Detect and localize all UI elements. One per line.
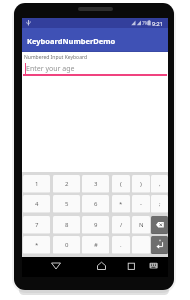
button[interactable]: (: [112, 175, 130, 193]
button[interactable]: .: [112, 236, 130, 254]
staticText: N: [139, 221, 144, 229]
staticText: 4: [35, 200, 39, 208]
button[interactable]: [149, 262, 159, 270]
button[interactable]: 9: [82, 216, 109, 234]
button[interactable]: [96, 261, 107, 271]
button[interactable]: 1: [23, 175, 50, 193]
button[interactable]: #: [82, 236, 109, 254]
button[interactable]: 5: [53, 195, 80, 213]
staticText: /: [120, 221, 123, 229]
button[interactable]: ,: [151, 175, 168, 193]
button[interactable]: 2: [53, 175, 80, 193]
staticText: .: [120, 241, 122, 249]
staticText: Enter your age: [26, 64, 75, 74]
button[interactable]: ): [132, 175, 150, 193]
staticText: ): [140, 180, 142, 188]
staticText: KeyboardNumberDemo: [27, 36, 116, 46]
button[interactable]: N: [132, 216, 150, 234]
staticText: *: [119, 200, 123, 208]
staticText: ;: [159, 200, 161, 208]
button[interactable]: 7: [23, 216, 50, 234]
staticText: Numbered Input Keyboard: [24, 54, 87, 61]
button[interactable]: Enter your age: [23, 60, 167, 75]
staticText: 7: [35, 221, 39, 229]
button[interactable]: 8: [53, 216, 80, 234]
staticText: #: [94, 241, 98, 249]
staticText: ,: [159, 180, 161, 188]
button[interactable]: [50, 261, 62, 271]
button[interactable]: [151, 236, 168, 254]
staticText: 0: [65, 241, 69, 249]
staticText: 1: [35, 180, 39, 188]
button[interactable]: [132, 236, 150, 254]
staticText: (: [120, 180, 122, 188]
button[interactable]: 6: [82, 195, 109, 213]
staticText: 9: [94, 221, 98, 229]
staticText: 9:21: [152, 20, 163, 27]
staticText: 3: [94, 180, 98, 188]
button[interactable]: *: [23, 236, 50, 254]
button[interactable]: *: [112, 195, 130, 213]
staticText: 8: [65, 221, 69, 229]
button[interactable]: 3: [82, 175, 109, 193]
button[interactable]: -: [132, 195, 150, 213]
button[interactable]: ;: [151, 195, 168, 213]
staticText: 2: [65, 180, 69, 188]
staticText: 5: [65, 200, 69, 208]
button[interactable]: /: [112, 216, 130, 234]
staticText: -: [140, 200, 142, 208]
button[interactable]: 4: [23, 195, 50, 213]
staticText: *: [35, 241, 39, 249]
button[interactable]: 0: [53, 236, 80, 254]
button[interactable]: [151, 216, 168, 234]
staticText: 7%: [142, 20, 149, 26]
button[interactable]: [127, 262, 136, 271]
staticText: 6: [94, 200, 98, 208]
